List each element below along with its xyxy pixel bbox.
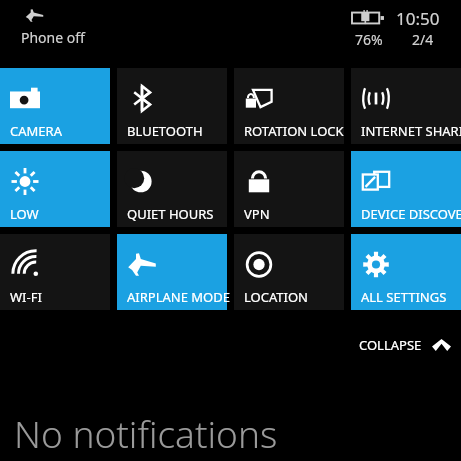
staticText: CAMERA xyxy=(10,122,62,140)
button[interactable]: ALL SETTINGS xyxy=(351,234,461,310)
button[interactable]: BLUETOOTH xyxy=(117,68,227,144)
staticText: VPN xyxy=(244,205,270,223)
staticText: 76% xyxy=(355,30,383,49)
other: Battery charging xyxy=(352,10,386,26)
staticText: Phone off xyxy=(21,28,85,47)
button[interactable]: COLLAPSE xyxy=(355,332,455,358)
button[interactable]: AIRPLANE MODE xyxy=(117,234,227,310)
staticText: No notifications xyxy=(14,408,278,458)
staticText: LOW xyxy=(10,205,39,223)
staticText: DEVICE DISCOVERY xyxy=(361,205,461,223)
staticText: ALL SETTINGS xyxy=(361,288,447,306)
staticText: BLUETOOTH xyxy=(127,122,203,140)
button[interactable]: INTERNET SHARING xyxy=(351,68,461,144)
button[interactable]: ROTATION LOCK xyxy=(234,68,344,144)
button[interactable]: LOCATION xyxy=(234,234,344,310)
staticText: QUIET HOURS xyxy=(127,205,214,223)
staticText: WI-FI xyxy=(10,288,42,306)
staticText: INTERNET SHARING xyxy=(361,122,461,140)
staticText: 2/4 xyxy=(412,30,434,49)
staticText: 10:50 xyxy=(396,7,440,30)
staticText: COLLAPSE xyxy=(359,336,422,354)
staticText: AIRPLANE MODE xyxy=(127,288,230,306)
button[interactable]: QUIET HOURS xyxy=(117,151,227,227)
button[interactable]: VPN xyxy=(234,151,344,227)
staticText: LOCATION xyxy=(244,288,308,306)
button[interactable]: DEVICE DISCOVERY xyxy=(351,151,461,227)
staticText: ROTATION LOCK xyxy=(244,122,344,140)
button[interactable]: LOW xyxy=(0,151,110,227)
button[interactable]: CAMERA xyxy=(0,68,110,144)
button[interactable]: WI-FI xyxy=(0,234,110,310)
other: Airplane mode on xyxy=(25,8,44,23)
